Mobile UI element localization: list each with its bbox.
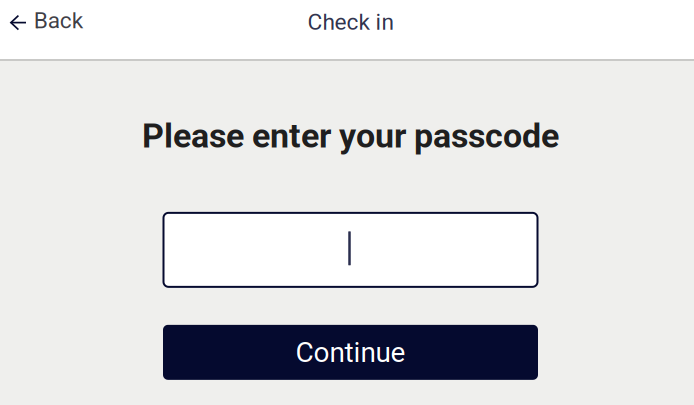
staticText: Continue [295, 336, 405, 369]
staticText: Back [34, 7, 83, 34]
staticText: Please enter your passcode [142, 116, 559, 156]
staticText: Check in [307, 9, 394, 35]
button[interactable]: Passcode [163, 213, 537, 287]
button[interactable]: Continue [163, 325, 538, 380]
button[interactable]: Back [0, 2, 97, 40]
